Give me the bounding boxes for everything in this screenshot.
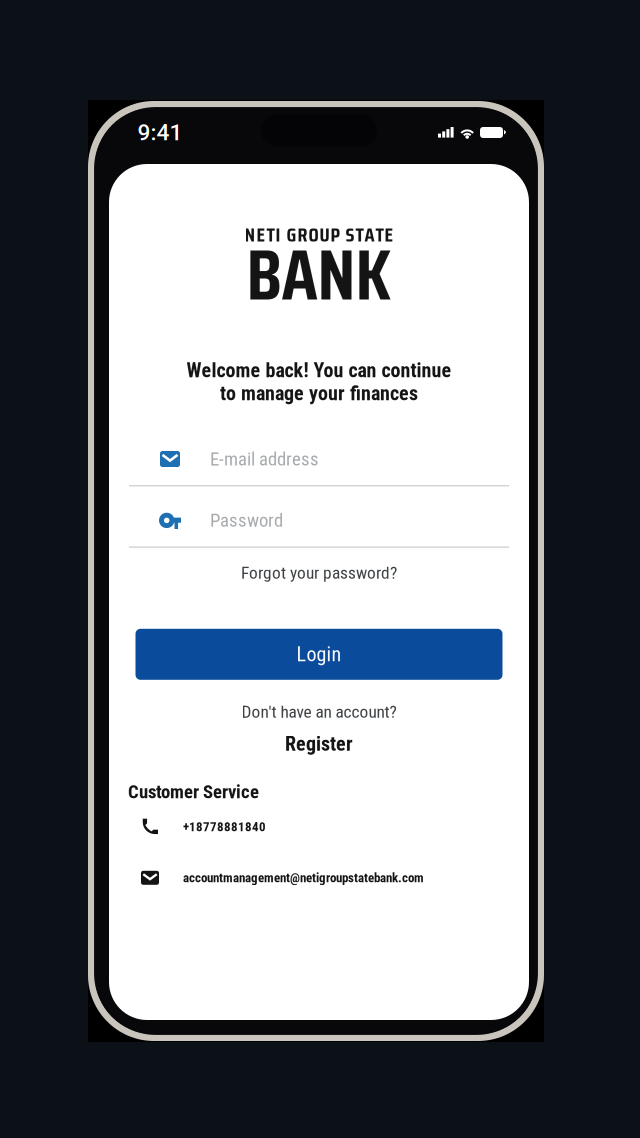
staticText: Customer Service [128,781,259,803]
staticText: to manage your finances [220,382,418,405]
staticText: Password [210,509,283,531]
button[interactable]: Login [135,629,502,680]
staticText: 9:41 [137,119,182,146]
button[interactable]: Register [219,734,419,754]
staticText: E-mail address [210,448,319,470]
staticText: Login [296,643,341,666]
button[interactable]: +18778881840 [110,816,528,838]
staticText: Welcome back! You can continue [186,359,451,382]
staticText: Forgot your password? [241,563,397,583]
staticText: +18778881840 [183,819,266,834]
button[interactable]: Forgot your password? [189,558,449,588]
staticText: BANK [246,218,391,331]
staticText: N E T I G R O U P S T A T E [244,219,393,250]
button[interactable]: accountmanagement@netigroupstatebank.com [110,867,528,889]
staticText: Register [285,732,353,755]
staticText: Don't have an account? [241,702,396,722]
staticText: accountmanagement@netigroupstatebank.com [183,870,424,885]
